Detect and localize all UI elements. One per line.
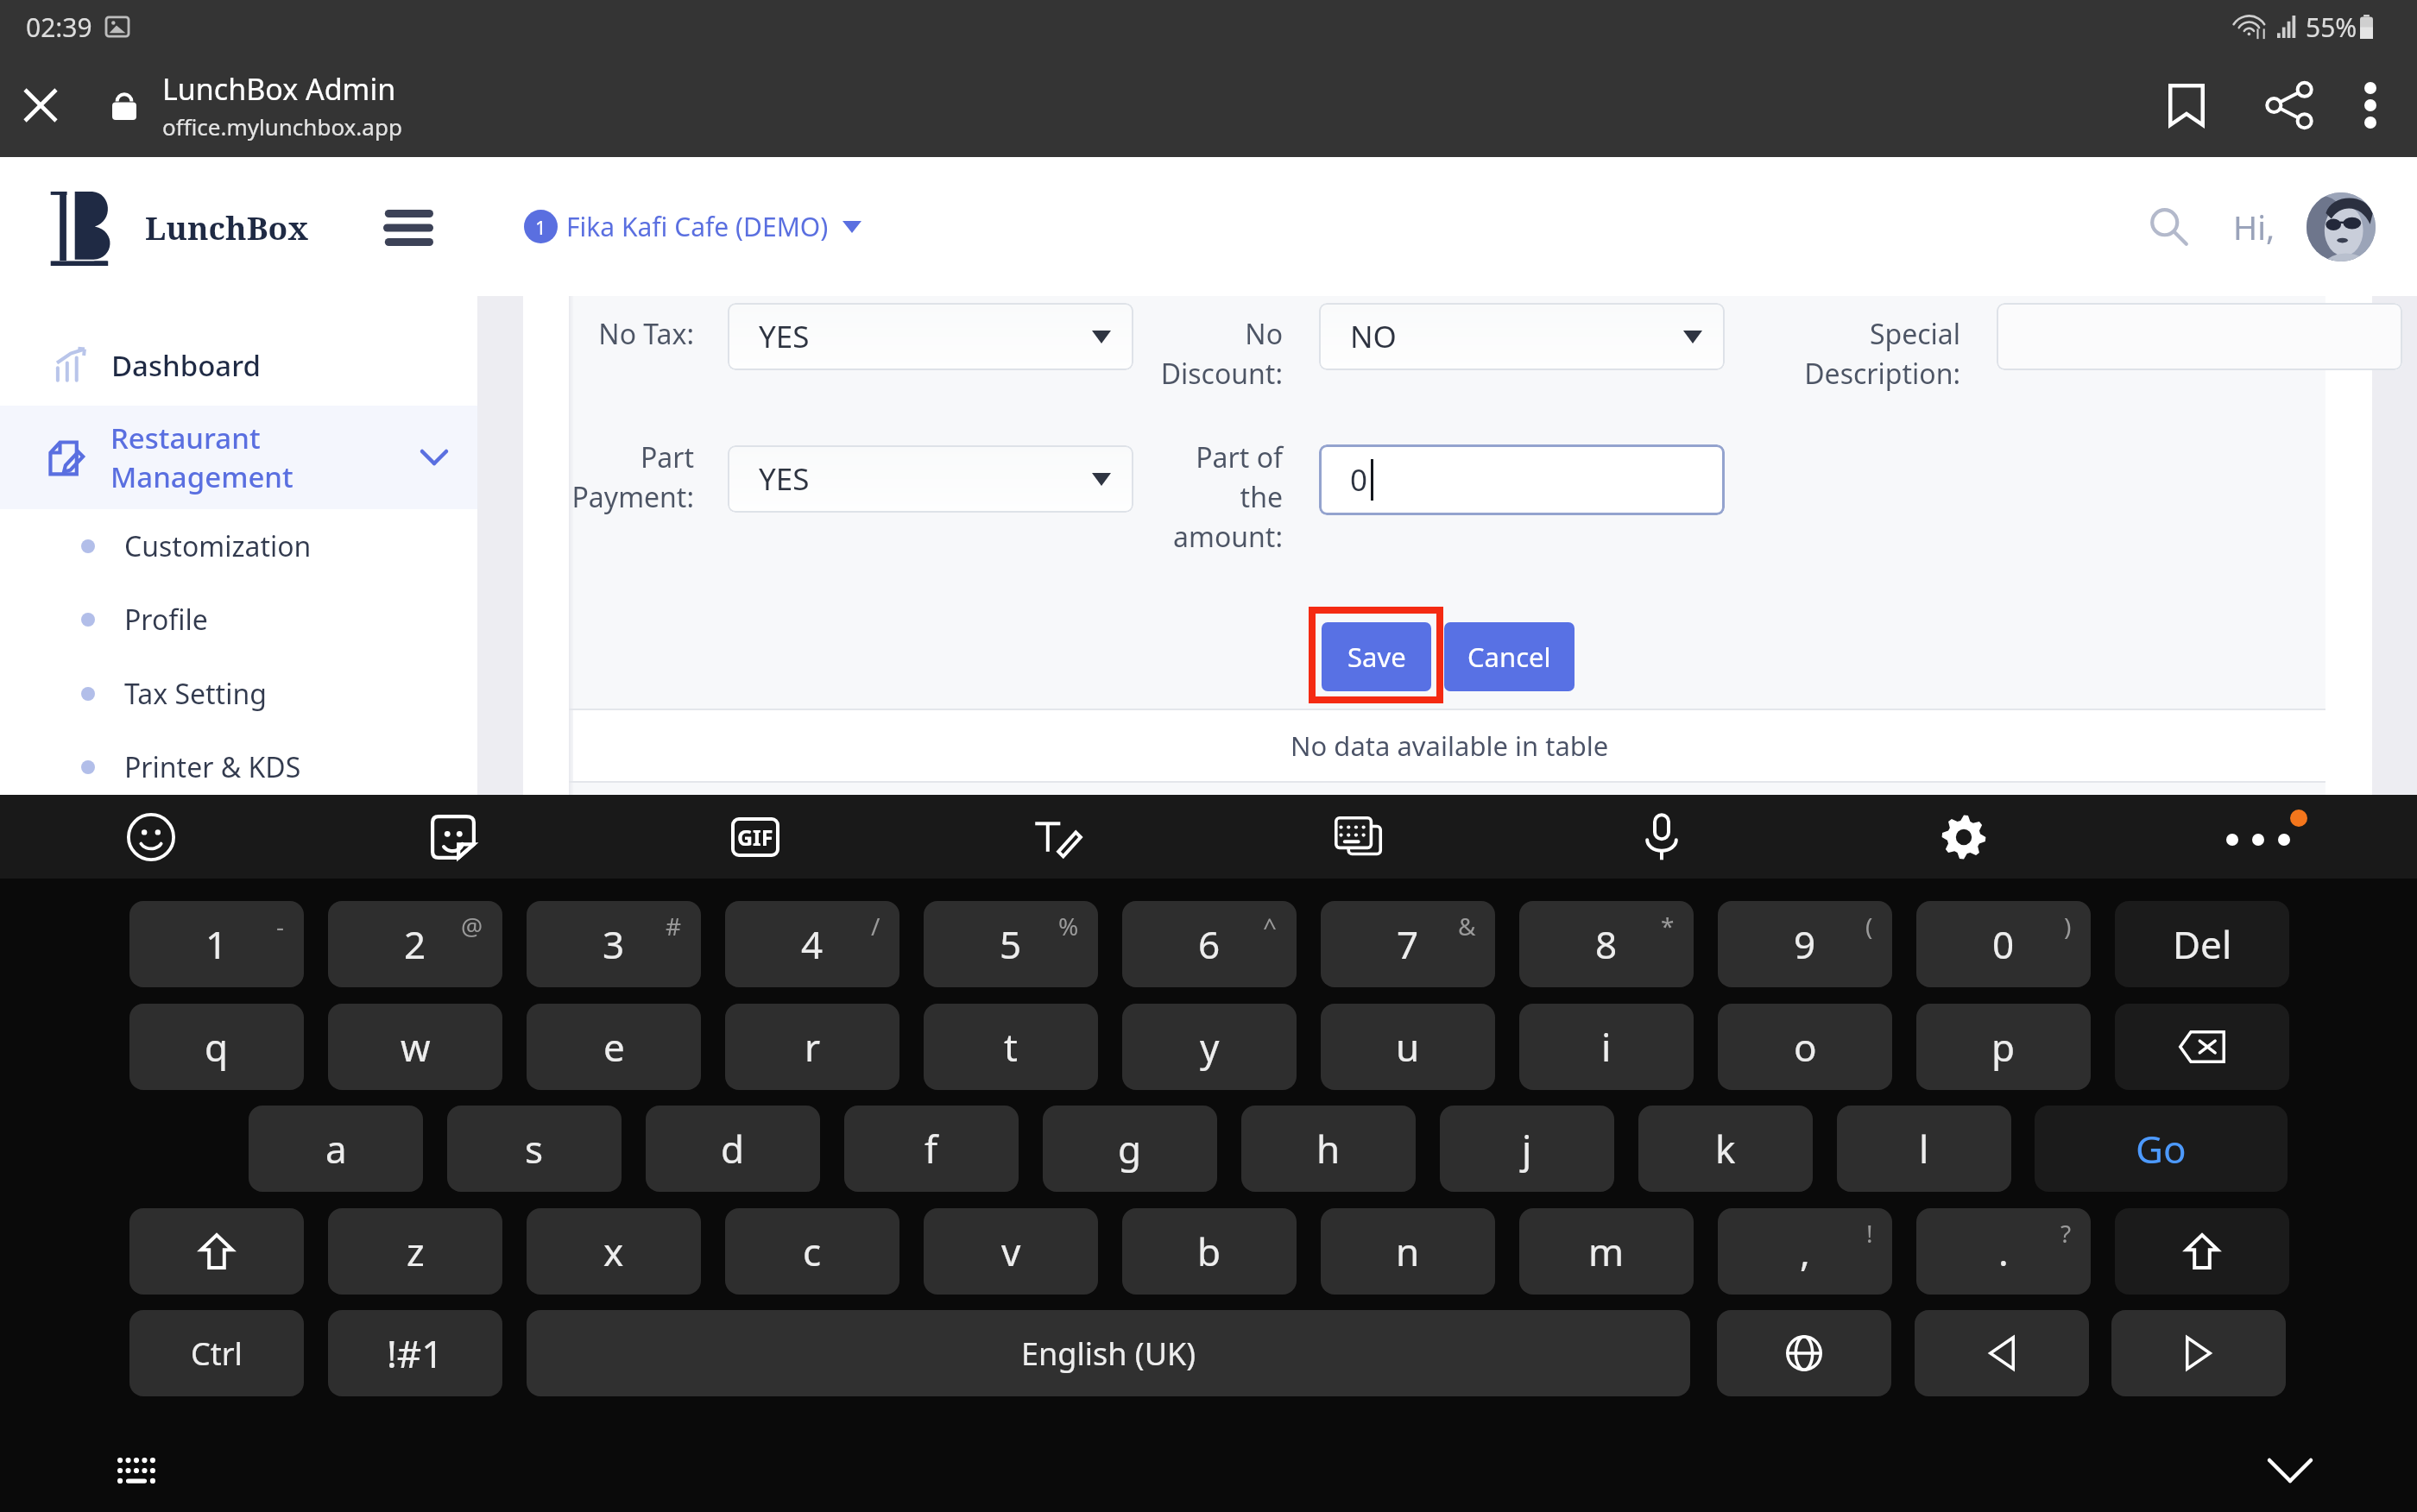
- button[interactable]: i: [1519, 1004, 1694, 1090]
- staticText: ,: [1800, 1225, 1810, 1277]
- button[interactable]: [2115, 1208, 2289, 1295]
- button[interactable]: NO: [1319, 303, 1725, 370]
- staticText: g: [1118, 1123, 1142, 1175]
- button[interactable]: 2: [328, 901, 502, 987]
- button[interactable]: YES: [728, 303, 1133, 370]
- button[interactable]: Printer & KDS: [0, 730, 477, 804]
- button[interactable]: n: [1321, 1208, 1495, 1295]
- staticText: Special Description:: [1804, 315, 1960, 392]
- button[interactable]: 5: [924, 901, 1098, 987]
- staticText: Dashboard: [111, 346, 261, 385]
- button[interactable]: d: [646, 1106, 820, 1192]
- staticText: b: [1197, 1225, 1221, 1277]
- staticText: 2: [404, 918, 426, 970]
- button[interactable]: Customization: [0, 509, 477, 583]
- button[interactable]: Search: [2133, 191, 2206, 263]
- button[interactable]: [2111, 1310, 2286, 1396]
- staticText: Customization: [124, 527, 312, 565]
- button[interactable]: e: [527, 1004, 701, 1090]
- button[interactable]: 8: [1519, 901, 1694, 987]
- button[interactable]: ,: [1718, 1208, 1892, 1295]
- button[interactable]: a: [249, 1106, 423, 1192]
- button[interactable]: x: [527, 1208, 701, 1295]
- button[interactable]: [2115, 1004, 2289, 1090]
- button[interactable]: Restaurant: [0, 406, 477, 509]
- button[interactable]: Cancel: [1444, 622, 1575, 691]
- button[interactable]: Tax Setting: [0, 657, 477, 731]
- staticText: Printer & KDS: [124, 748, 301, 786]
- button[interactable]: English (UK): [527, 1310, 1690, 1396]
- staticText: Del: [2173, 918, 2232, 970]
- button[interactable]: m: [1519, 1208, 1694, 1295]
- staticText: w: [401, 1021, 431, 1073]
- button[interactable]: y: [1122, 1004, 1297, 1090]
- button[interactable]: !#1: [328, 1310, 502, 1396]
- button[interactable]: Profile: [0, 583, 477, 657]
- button[interactable]: 6: [1122, 901, 1297, 987]
- button[interactable]: f: [844, 1106, 1019, 1192]
- button[interactable]: [1997, 303, 2402, 370]
- button[interactable]: 0: [1916, 901, 2091, 987]
- staticText: k: [1715, 1123, 1736, 1175]
- staticText: @: [461, 910, 483, 942]
- button[interactable]: j: [1440, 1106, 1614, 1192]
- staticText: 0: [1992, 918, 2015, 970]
- button[interactable]: s: [447, 1106, 622, 1192]
- button[interactable]: 9: [1718, 901, 1892, 987]
- button[interactable]: Bookmark: [2124, 54, 2250, 157]
- staticText: y: [1200, 1021, 1220, 1073]
- button[interactable]: Sticker: [302, 795, 604, 879]
- staticText: LunchBox: [145, 205, 309, 249]
- button[interactable]: k: [1638, 1106, 1813, 1192]
- button[interactable]: 1: [129, 901, 304, 987]
- button[interactable]: h: [1241, 1106, 1416, 1192]
- button[interactable]: Close: [0, 54, 81, 157]
- button[interactable]: Save: [1322, 622, 1431, 691]
- staticText: !#1: [387, 1327, 444, 1379]
- button[interactable]: v: [924, 1208, 1098, 1295]
- staticText: YES: [759, 316, 810, 357]
- button[interactable]: q: [129, 1004, 304, 1090]
- staticText: GIF: [737, 822, 773, 852]
- button[interactable]: Voice input: [1511, 795, 1813, 879]
- button[interactable]: [129, 1208, 304, 1295]
- staticText: Part of the amount:: [1173, 438, 1283, 555]
- button[interactable]: Text edit: [906, 795, 1208, 879]
- button[interactable]: Go: [2035, 1106, 2288, 1192]
- button[interactable]: Hide keyboard: [2253, 1433, 2327, 1508]
- button[interactable]: b: [1122, 1208, 1297, 1295]
- button[interactable]: o: [1718, 1004, 1892, 1090]
- button[interactable]: Dashboard: [0, 321, 477, 409]
- button[interactable]: Del: [2115, 901, 2289, 987]
- button[interactable]: Share: [2250, 54, 2329, 157]
- button[interactable]: Settings: [1813, 795, 2115, 879]
- button[interactable]: w: [328, 1004, 502, 1090]
- button[interactable]: Menu: [371, 193, 445, 262]
- button[interactable]: Keyboard layout: [104, 1438, 169, 1503]
- staticText: 0: [1350, 459, 1368, 501]
- button[interactable]: YES: [728, 445, 1133, 513]
- button[interactable]: GIF: [604, 795, 906, 879]
- button[interactable]: More: [2115, 795, 2417, 879]
- button[interactable]: u: [1321, 1004, 1495, 1090]
- button[interactable]: 0: [1319, 444, 1725, 515]
- button[interactable]: [1717, 1310, 1891, 1396]
- button[interactable]: Clipboard: [1208, 795, 1511, 879]
- button[interactable]: c: [725, 1208, 899, 1295]
- button[interactable]: 3: [527, 901, 701, 987]
- button[interactable]: .: [1916, 1208, 2091, 1295]
- button[interactable]: 4: [725, 901, 899, 987]
- button[interactable]: r: [725, 1004, 899, 1090]
- button[interactable]: g: [1043, 1106, 1217, 1192]
- button[interactable]: l: [1837, 1106, 2011, 1192]
- staticText: *: [1661, 910, 1675, 942]
- button[interactable]: t: [924, 1004, 1098, 1090]
- button[interactable]: 7: [1321, 901, 1495, 987]
- button[interactable]: Ctrl: [129, 1310, 304, 1396]
- staticText: p: [1991, 1021, 2016, 1073]
- button[interactable]: Emoji: [0, 795, 302, 879]
- button[interactable]: p: [1916, 1004, 2091, 1090]
- button[interactable]: More options: [2329, 54, 2412, 157]
- button[interactable]: z: [328, 1208, 502, 1295]
- button[interactable]: [1915, 1310, 2089, 1396]
